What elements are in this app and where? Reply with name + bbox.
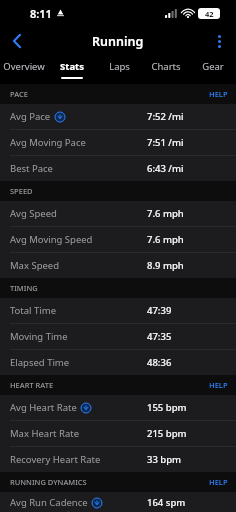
staticText: Avg Moving Pace (10, 136, 86, 149)
staticText: 8:11 (30, 6, 52, 21)
staticText: TIMING (10, 283, 38, 293)
staticText: 155 bpm (147, 401, 187, 414)
staticText: Avg Run Cadence (10, 496, 88, 509)
staticText: 7:52 /mi (147, 110, 184, 123)
button[interactable]: Avg Heart Rate (0, 395, 236, 420)
staticText: 6:43 /mi (147, 162, 184, 175)
button[interactable]: More options (202, 26, 236, 56)
button[interactable]: Avg Speed (0, 201, 236, 226)
button[interactable]: Best Pace (0, 156, 236, 181)
button[interactable]: Stats (48, 56, 95, 83)
staticText: Gear (202, 60, 224, 73)
button[interactable]: Gear (189, 56, 236, 83)
staticText: RUNNING DYNAMICS (10, 477, 87, 487)
button[interactable]: Overview (0, 56, 48, 83)
button[interactable]: Avg Run Cadence (0, 492, 236, 512)
button[interactable]: HELP (209, 89, 228, 99)
staticText: Best Pace (10, 162, 53, 175)
staticText: 42 (205, 9, 214, 19)
button[interactable]: Moving Time (0, 324, 236, 349)
staticText: 48:36 (147, 356, 172, 369)
staticText: 7:51 /mi (147, 136, 184, 149)
staticText: HEART RATE (10, 380, 54, 390)
staticText: 33 bpm (147, 453, 182, 466)
button[interactable]: HELP (209, 380, 228, 390)
staticText: SPEED (10, 186, 33, 196)
staticText: Running (92, 33, 144, 50)
button[interactable]: Avg Moving Speed (0, 227, 236, 252)
button[interactable]: Back (0, 26, 34, 56)
staticText: 215 bpm (147, 427, 187, 440)
staticText: 47:35 (147, 330, 172, 343)
button[interactable]: HELP (209, 477, 228, 487)
button[interactable]: Charts (142, 56, 189, 83)
staticText: 7.6 mph (147, 233, 184, 246)
staticText: Recovery Heart Rate (10, 453, 101, 466)
staticText: PACE (10, 89, 28, 99)
staticText: Charts (151, 60, 181, 73)
staticText: Overview (3, 60, 45, 73)
staticText: Moving Time (10, 330, 68, 343)
button[interactable]: Recovery Heart Rate (0, 447, 236, 472)
staticText: Max Heart Rate (10, 427, 80, 440)
staticText: 164 spm (147, 496, 186, 509)
staticText: Avg Heart Rate (10, 401, 77, 414)
staticText: Avg Speed (10, 207, 57, 220)
button[interactable]: Avg Pace (0, 104, 236, 129)
staticText: HELP (209, 380, 228, 390)
button[interactable]: Avg Moving Pace (0, 130, 236, 155)
staticText: HELP (209, 89, 228, 99)
button[interactable]: Max Heart Rate (0, 421, 236, 446)
button[interactable]: Laps (95, 56, 142, 83)
staticText: Total Time (10, 304, 57, 317)
staticText: 8.9 mph (147, 259, 184, 272)
staticText: Laps (109, 60, 130, 73)
staticText: 7.6 mph (147, 207, 184, 220)
button[interactable]: Total Time (0, 298, 236, 323)
staticText: Avg Moving Speed (10, 233, 93, 246)
staticText: Max Speed (10, 259, 60, 272)
staticText: HELP (209, 477, 228, 487)
staticText: 47:39 (147, 304, 172, 317)
staticText: Stats (60, 60, 84, 73)
button[interactable]: Max Speed (0, 253, 236, 278)
staticText: Elapsed Time (10, 356, 70, 369)
button[interactable]: Elapsed Time (0, 350, 236, 375)
staticText: Avg Pace (10, 110, 51, 123)
